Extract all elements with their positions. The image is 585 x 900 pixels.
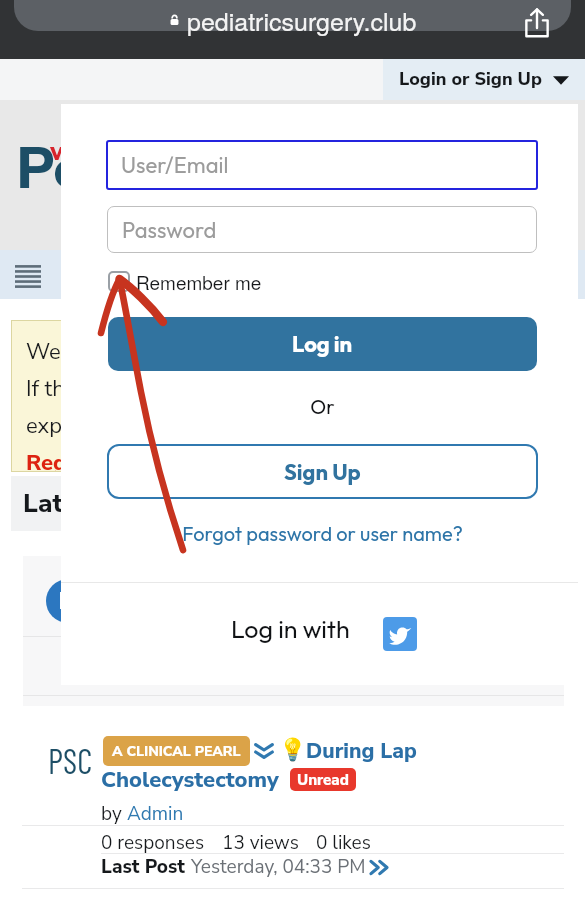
button[interactable]: Log in [108, 317, 537, 371]
button[interactable]: Forgot password or user name? [64, 521, 581, 546]
staticText: 0 responses [101, 830, 205, 856]
button[interactable]: A CLINICAL PEARL [112, 736, 241, 766]
button[interactable]: Menu [15, 265, 41, 288]
staticText: Sign Up [284, 458, 361, 486]
staticText: Login or Sign Up [399, 67, 542, 92]
button[interactable]: Admin [127, 801, 184, 827]
button[interactable]: Sign Up [107, 444, 538, 499]
button[interactable]: Remember me [108, 268, 262, 295]
staticText: experie [26, 411, 99, 441]
staticText: Welcome [26, 337, 120, 367]
staticText: Or [64, 394, 581, 419]
button[interactable]: User/Email [106, 140, 538, 190]
staticText: PSC [48, 740, 93, 781]
staticText: M [58, 586, 78, 617]
button[interactable]: Password [107, 206, 537, 253]
staticText: w [50, 134, 73, 169]
staticText: 💡 [279, 737, 307, 763]
staticText: Log in with [231, 613, 350, 645]
button[interactable]: During Lap [306, 737, 417, 766]
staticText: Pe [16, 129, 85, 208]
button[interactable]: Log in with Twitter [383, 617, 417, 651]
button[interactable] [14, 0, 571, 31]
button[interactable]: Share [518, 4, 556, 42]
staticText: If this [26, 374, 81, 404]
staticText: A CLINICAL PEARL [112, 742, 241, 761]
staticText: Unread [297, 770, 349, 790]
staticText: Password [122, 216, 217, 244]
staticText: Log in [292, 330, 353, 358]
staticText: Yesterday, 04:33 PM [191, 854, 366, 880]
staticText: User/Email [121, 151, 229, 179]
staticText: Last Post [101, 854, 191, 880]
staticText: Latest [23, 486, 101, 521]
button[interactable]: Cholecystectomy [101, 765, 279, 795]
staticText: 0 likes [316, 830, 371, 856]
button[interactable]: Login or Sign Up [399, 59, 569, 100]
staticText: Registe [26, 448, 105, 472]
staticText: Remember me [136, 268, 262, 295]
staticText: by [101, 801, 127, 827]
staticText: 13 views [222, 830, 299, 856]
staticText: pediatricsurgery.club [187, 2, 417, 38]
